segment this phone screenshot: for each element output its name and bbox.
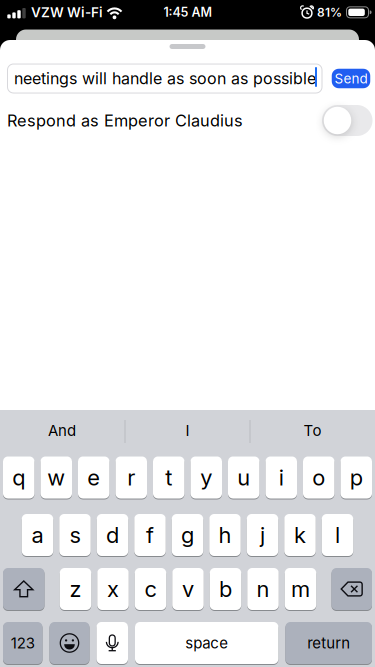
staticText: h [218,522,231,548]
staticText: e [87,464,100,491]
staticText: I [185,421,189,439]
staticText: 123 [11,634,35,652]
staticText: q [12,464,25,491]
staticText: t [165,464,172,491]
staticText: space [185,634,228,652]
staticText: d [106,522,119,548]
staticText: a [31,522,43,548]
staticText: neetings will handle as soon as possible [14,69,316,88]
staticText: w [47,464,65,491]
staticText: l [335,522,340,548]
staticText: o [312,464,325,491]
staticText: s [69,522,80,548]
staticText: f [146,522,154,548]
staticText: x [107,576,119,602]
staticText: g [181,522,194,548]
staticText: j [260,522,265,548]
staticText: n [256,576,269,602]
staticText: r [127,464,135,491]
staticText: Respond as Emperor Claudius [7,111,243,130]
staticText: To [303,421,321,439]
staticText: m [291,576,310,602]
staticText: Send [334,70,367,87]
staticText: 81% [317,5,342,19]
staticText: k [294,522,306,548]
staticText: VZW Wi-Fi [31,4,103,20]
staticText: And [48,421,76,439]
staticText: b [219,576,232,602]
staticText: return [307,634,350,652]
staticText: z [69,576,81,602]
staticText: v [182,576,194,602]
staticText: c [144,576,156,602]
staticText: p [350,464,363,491]
staticText: u [237,464,250,491]
staticText: 1:45 AM [163,5,212,20]
staticText: i [279,464,284,491]
staticText: y [200,464,212,491]
